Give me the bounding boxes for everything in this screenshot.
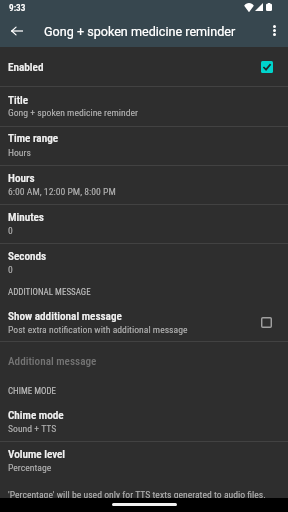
staticText: Sound + TTS (8, 423, 57, 434)
staticText: Seconds (8, 250, 47, 263)
button[interactable]: Show additional message checkbox (257, 313, 275, 331)
staticText: 0 (8, 264, 13, 275)
staticText: Enabled (8, 61, 44, 74)
staticText: 'Percentage' will be used only for TTS t… (8, 489, 266, 500)
button[interactable]: More options (260, 17, 288, 45)
button[interactable]: Time range (0, 127, 288, 165)
staticText: Title (8, 94, 29, 107)
staticText: 9:33 (9, 2, 26, 13)
button[interactable]: Hours (0, 166, 288, 204)
button[interactable]: Title (0, 87, 288, 125)
staticText: Gong + spoken medicine reminder (44, 24, 236, 39)
button[interactable]: Seconds (0, 244, 288, 282)
staticText: Show additional message (8, 310, 122, 323)
button[interactable]: Additional message (0, 342, 288, 380)
staticText: Volume level (8, 448, 66, 461)
button[interactable]: Minutes (0, 205, 288, 242)
button[interactable]: Volume level (0, 442, 288, 481)
staticText: Minutes (8, 211, 44, 224)
button[interactable]: Enabled (0, 47, 288, 86)
staticText: Hours (8, 147, 31, 158)
staticText: Gong + spoken medicine reminder (8, 107, 139, 118)
staticText: Additional message (8, 355, 97, 368)
staticText: CHIME MODE (8, 386, 57, 397)
button[interactable]: Enabled checkbox, checked (258, 58, 276, 76)
staticText: Time range (8, 132, 59, 145)
staticText: Percentage (8, 462, 52, 473)
button[interactable]: Chime mode (0, 401, 288, 440)
staticText: Chime mode (8, 409, 64, 422)
button[interactable]: Show additional message (0, 303, 288, 341)
staticText: Post extra notification with additional … (8, 324, 188, 335)
staticText: 0 (8, 225, 13, 236)
staticText: 6:00 AM, 12:00 PM, 8:00 PM (8, 186, 116, 197)
staticText: ADDITIONAL MESSAGE (8, 287, 91, 298)
button[interactable]: Navigate up (2, 17, 32, 47)
staticText: Hours (8, 172, 35, 185)
